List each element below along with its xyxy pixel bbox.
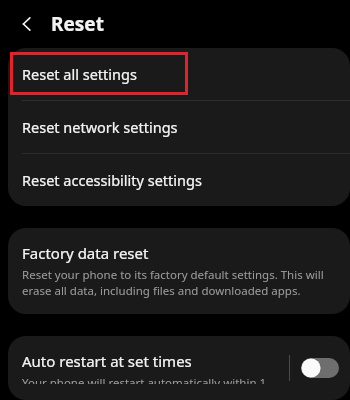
staticText: Factory data reset — [22, 243, 149, 263]
staticText: Reset accessibility settings — [22, 170, 202, 190]
button[interactable]: Back — [14, 11, 40, 37]
button[interactable]: Reset network settings — [8, 101, 350, 153]
staticText: Reset — [51, 11, 104, 37]
staticText: Your phone will restart automatically wi… — [22, 375, 281, 384]
button[interactable]: Reset accessibility settings — [8, 154, 350, 206]
staticText: Reset all settings — [22, 64, 137, 84]
button[interactable]: Factory data reset — [8, 228, 350, 314]
button[interactable]: Reset all settings — [8, 48, 350, 100]
staticText: Reset your phone to its factory default … — [22, 267, 334, 298]
staticText: Auto restart at set times — [22, 351, 192, 371]
button[interactable]: Auto restart at set times — [8, 336, 289, 400]
button[interactable]: Auto restart at set times toggle — [300, 353, 340, 383]
staticText: Reset network settings — [22, 117, 178, 137]
